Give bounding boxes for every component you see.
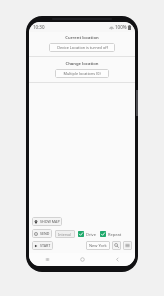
button[interactable]: Home: [65, 253, 100, 266]
button[interactable]: START: [32, 241, 53, 250]
staticText: 100%: [115, 24, 127, 30]
button[interactable]: SHOW MAP: [32, 217, 62, 226]
button[interactable]: Interval: [55, 230, 75, 238]
button[interactable]: Search: [112, 241, 121, 250]
staticText: SEND: [40, 231, 50, 236]
button[interactable]: Drive: [77, 230, 97, 238]
staticText: START: [40, 243, 51, 248]
button[interactable]: List: [123, 241, 132, 250]
staticText: SHOW MAP: [40, 219, 60, 224]
staticText: Change location: [29, 61, 135, 67]
button[interactable]: Recents: [29, 253, 65, 266]
button[interactable]: New York: [86, 241, 110, 250]
staticText: Interval: [58, 232, 72, 237]
button[interactable]: Multiple locations (0): [55, 69, 109, 78]
staticText: Device Location is turned off: [57, 45, 108, 50]
button[interactable]: Repeat: [99, 230, 123, 238]
button[interactable]: SEND: [32, 229, 52, 238]
button[interactable]: Device Location is turned off: [49, 43, 115, 52]
staticText: Drive: [86, 232, 96, 237]
staticText: Repeat: [108, 232, 122, 237]
staticText: 10:30: [33, 24, 45, 30]
staticText: New York: [89, 243, 107, 248]
button[interactable]: Back: [100, 253, 135, 266]
staticText: Current location: [29, 35, 135, 41]
staticText: Multiple locations (0): [63, 71, 101, 76]
